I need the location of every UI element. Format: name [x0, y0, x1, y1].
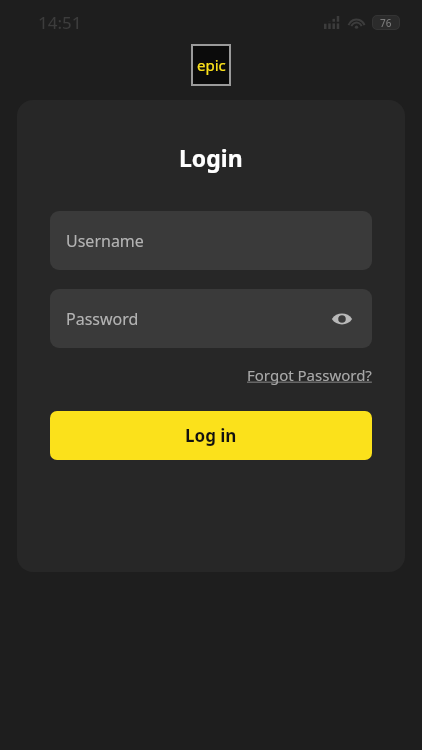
button[interactable]: Username — [50, 211, 372, 270]
staticText: Username — [66, 230, 144, 252]
button[interactable]: Log in — [50, 411, 372, 460]
staticText: 76 — [380, 16, 392, 30]
staticText: Password — [66, 308, 139, 330]
staticText: 14:51 — [38, 11, 82, 34]
staticText: Forgot Password? — [247, 365, 372, 385]
staticText: Log in — [185, 424, 237, 447]
button[interactable]: Password — [50, 289, 372, 348]
staticText: epic — [197, 55, 226, 75]
staticText: Login — [179, 142, 243, 173]
button[interactable]: Show password — [328, 305, 356, 333]
button[interactable]: Forgot Password? — [247, 365, 372, 385]
